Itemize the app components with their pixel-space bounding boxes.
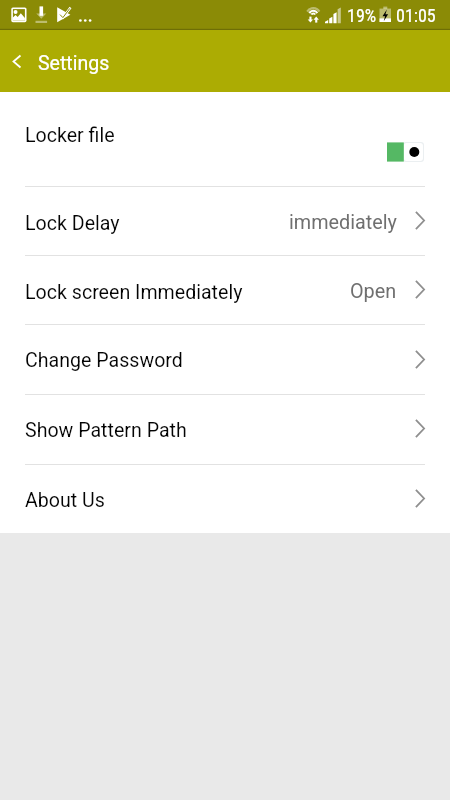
staticText: Settings (38, 52, 110, 75)
button[interactable]: Show Pattern Path (0, 395, 450, 464)
button[interactable]: Toggle locker file (387, 142, 424, 162)
staticText: 19% (347, 5, 377, 26)
staticText: immediately (289, 211, 397, 234)
button[interactable]: Lock Delay (0, 187, 450, 255)
button[interactable]: Lock screen Immediately (0, 256, 450, 324)
button[interactable]: Back (0, 30, 34, 92)
button[interactable]: Locker file (0, 92, 450, 186)
staticText: Lock Delay (25, 212, 120, 235)
staticText: About Us (25, 489, 105, 512)
button[interactable]: Change Password (0, 325, 450, 394)
staticText: 01:05 (396, 5, 436, 26)
button[interactable]: About Us (0, 465, 450, 533)
staticText: Change Password (25, 349, 183, 372)
staticText: Show Pattern Path (25, 419, 187, 442)
staticText: Locker file (25, 124, 115, 147)
staticText: Lock screen Immediately (25, 281, 243, 304)
staticText: Open (350, 280, 397, 303)
